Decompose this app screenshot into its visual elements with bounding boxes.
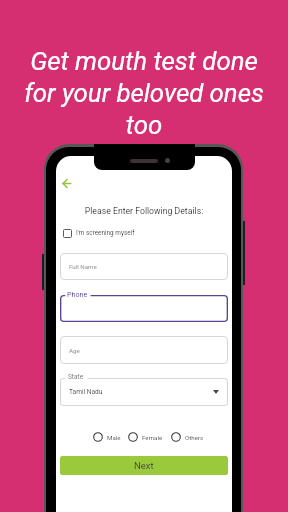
staticText: Next <box>134 460 154 471</box>
staticText: Please Enter Following Details: <box>56 206 232 216</box>
button[interactable]: Female <box>128 432 163 442</box>
button[interactable]: Others <box>171 432 204 442</box>
button[interactable]: Back <box>58 175 74 191</box>
staticText: Get mouth test done for your beloved one… <box>0 46 288 141</box>
button[interactable]: I'm screening myself <box>63 226 135 240</box>
button[interactable]: Next <box>60 456 228 475</box>
button[interactable]: Male <box>93 432 121 442</box>
staticText: State <box>68 373 84 381</box>
staticText: Others <box>185 434 204 441</box>
staticText: I'm screening myself <box>76 229 135 237</box>
button[interactable]: State <box>60 378 228 406</box>
staticText: Tamil Nadu <box>69 388 103 396</box>
staticText: Age <box>69 347 80 354</box>
staticText: Female <box>142 434 163 441</box>
staticText: Phone <box>67 290 88 298</box>
staticText: Full Name <box>69 263 97 270</box>
button[interactable]: Phone <box>60 295 228 322</box>
button[interactable]: Age <box>60 336 228 364</box>
staticText: Male <box>107 434 121 441</box>
button[interactable]: Full Name <box>60 253 228 280</box>
